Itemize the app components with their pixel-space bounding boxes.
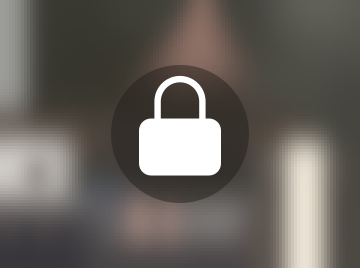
button[interactable]: Unlock [111, 65, 249, 203]
